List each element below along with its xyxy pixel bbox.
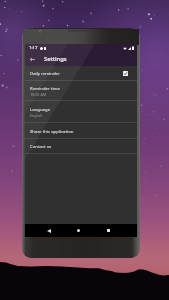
button[interactable]: Recents [102, 224, 115, 237]
staticText: Language [30, 106, 51, 112]
staticText: Settings [44, 55, 67, 63]
button[interactable]: Reminder time [25, 81, 137, 100]
staticText: Share this application [30, 128, 74, 134]
staticText: Reminder time [30, 85, 60, 91]
button[interactable]: Back [28, 55, 37, 64]
button[interactable]: Back [42, 224, 55, 237]
button[interactable]: Contact us [25, 139, 137, 153]
button[interactable]: Home [72, 224, 85, 237]
button[interactable]: Daily reminder [25, 66, 137, 80]
staticText: Daily reminder [30, 70, 60, 76]
staticText: Contact us [30, 143, 52, 149]
staticText: 10:00 AM [30, 92, 47, 97]
button[interactable]: Share this application [25, 123, 137, 138]
button[interactable]: Language [25, 101, 137, 122]
staticText: English [30, 113, 43, 118]
staticText: 1:17 [29, 45, 38, 51]
